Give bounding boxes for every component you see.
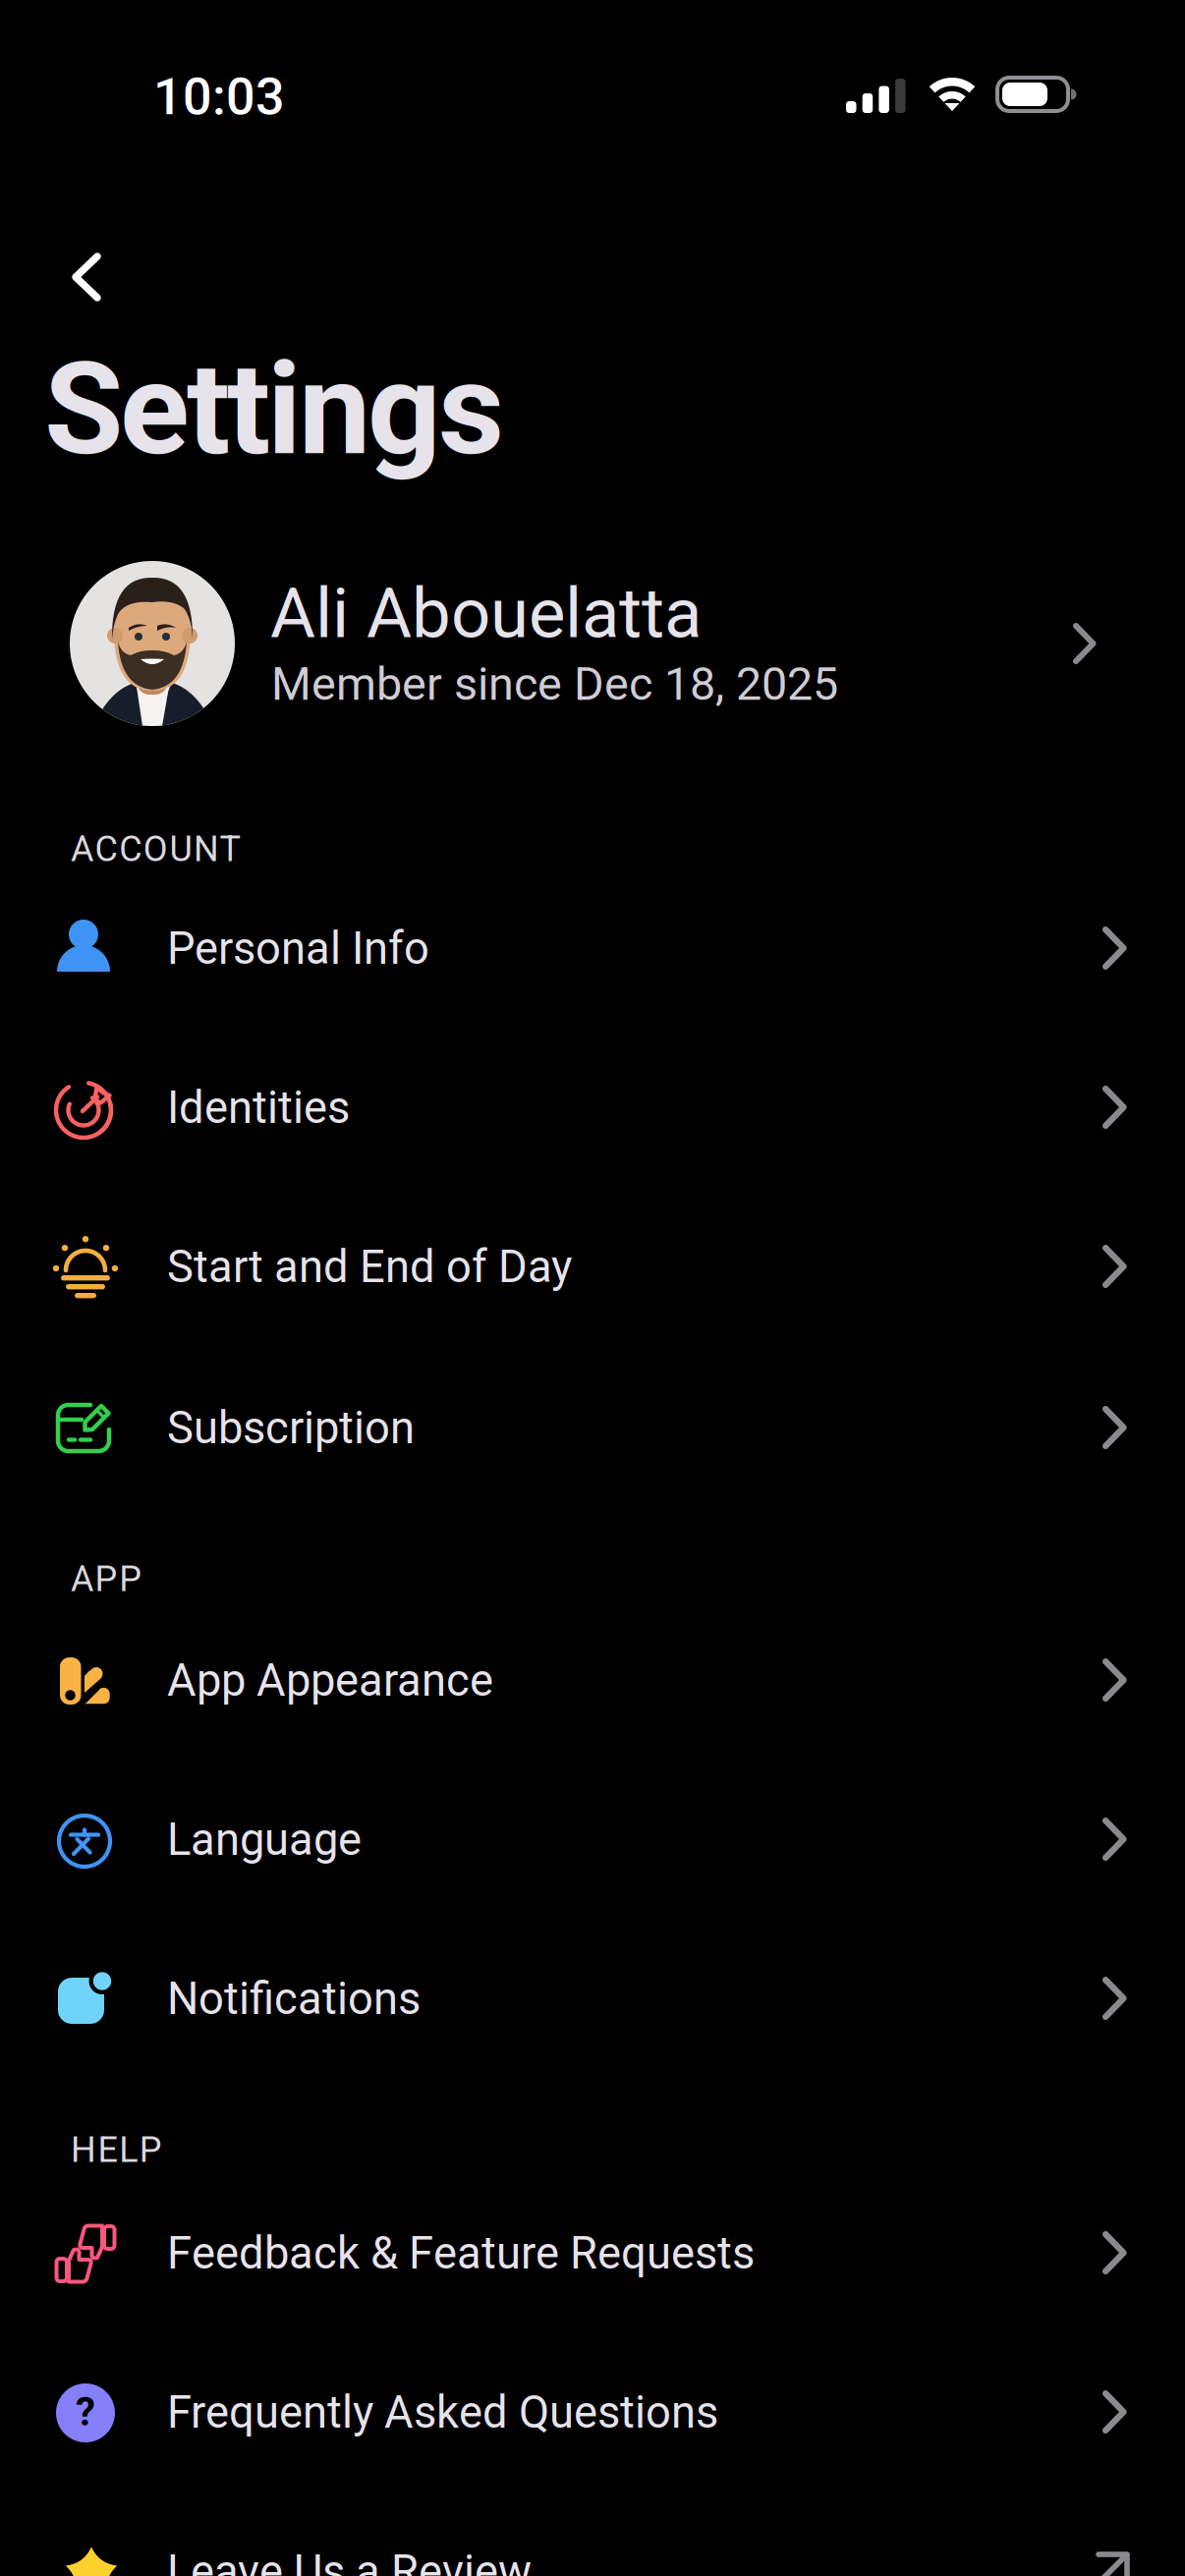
staticText: APP: [71, 1558, 142, 1600]
staticText: ?: [76, 2389, 95, 2435]
staticText: Frequently Asked Questions: [167, 2386, 718, 2439]
button[interactable]: Ali Abouelatta: [0, 547, 1185, 740]
staticText: Leave Us a Review: [167, 2546, 532, 2576]
staticText: Feedback & Feature Requests: [167, 2227, 755, 2279]
staticText: App Appearance: [167, 1654, 493, 1707]
staticText: ACCOUNT: [71, 828, 240, 870]
staticText: Notifications: [167, 1973, 421, 2025]
button[interactable]: App Appearance: [0, 1632, 1185, 1742]
staticText: Member since Dec 18, 2025: [271, 657, 838, 711]
staticText: Subscription: [167, 1402, 415, 1454]
button[interactable]: Notifications: [0, 1950, 1185, 2060]
staticText: Language: [167, 1814, 362, 1866]
staticText: Start and End of Day: [167, 1241, 572, 1293]
staticText: Personal Info: [167, 923, 429, 975]
button[interactable]: Back: [39, 230, 134, 324]
staticText: HELP: [71, 2129, 162, 2170]
button[interactable]: Feedback & Feature Requests: [0, 2205, 1185, 2315]
button[interactable]: Identities: [0, 1059, 1185, 1169]
staticText: Settings: [44, 334, 504, 484]
button[interactable]: Subscription: [0, 1379, 1185, 1489]
button[interactable]: Start and End of Day: [0, 1218, 1185, 1328]
button[interactable]: Personal Info: [0, 900, 1185, 1010]
button[interactable]: Language: [0, 1791, 1185, 1901]
staticText: 10:03: [153, 67, 285, 127]
staticText: Identities: [167, 1082, 350, 1134]
staticText: Ali Abouelatta: [270, 573, 702, 654]
button[interactable]: ?: [0, 2364, 1185, 2474]
button[interactable]: Leave Us a Review: [0, 2523, 1185, 2576]
